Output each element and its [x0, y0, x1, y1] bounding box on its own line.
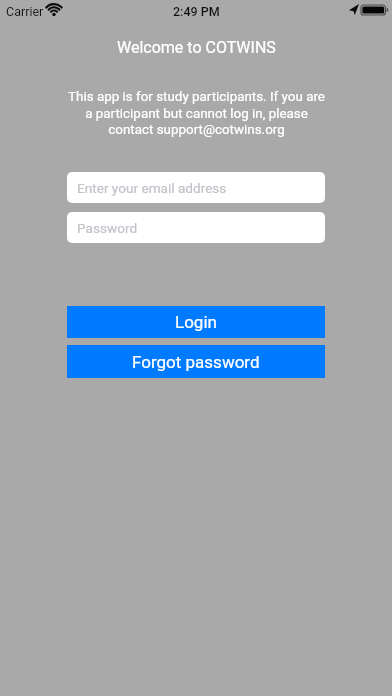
button[interactable]: Forgot password — [67, 345, 325, 378]
staticText: Welcome to COTWINS — [117, 38, 276, 57]
button[interactable]: Login — [67, 306, 325, 338]
staticText: Enter your email address — [77, 180, 227, 196]
staticText: Login — [175, 312, 217, 332]
staticText: Password — [77, 220, 138, 236]
button[interactable]: Password — [67, 212, 325, 243]
button[interactable]: Enter your email address — [67, 172, 325, 203]
staticText: 2:49 PM — [173, 4, 220, 19]
staticText: This app is for study participants. If y… — [68, 89, 325, 137]
staticText: Carrier — [6, 4, 44, 19]
staticText: Forgot password — [132, 352, 260, 372]
